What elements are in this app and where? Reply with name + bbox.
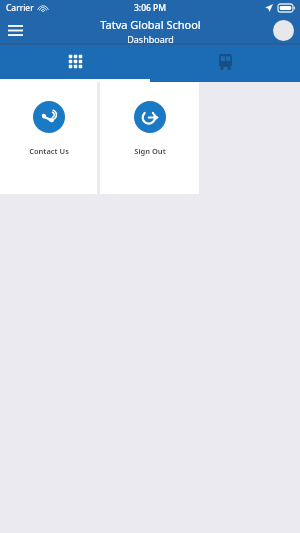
button[interactable]: Sign Out: [100, 82, 199, 194]
staticText: Contact Us: [29, 146, 69, 156]
staticText: Sign Out: [134, 146, 166, 156]
button[interactable]: Open navigation menu: [0, 16, 30, 45]
button[interactable]: Profile: [272, 19, 295, 42]
staticText: Dashboard: [127, 33, 174, 45]
staticText: Tatva Global School: [100, 17, 201, 32]
staticText: 3:06 PM: [134, 2, 167, 14]
staticText: Carrier: [6, 2, 34, 14]
button[interactable]: Transport tab: [150, 45, 300, 82]
button[interactable]: Contact Us: [0, 82, 97, 194]
button[interactable]: Dashboard tab: [0, 45, 150, 82]
